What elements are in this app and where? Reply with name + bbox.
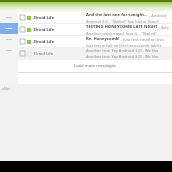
button[interactable]: Select message [20, 39, 25, 44]
staticText: Droid Life [34, 15, 55, 21]
staticText: Another quick email, love it. - "Nailed"… [86, 31, 170, 35]
staticText: Android 3.0 - "Nailed" Site Editor http:… [86, 19, 170, 23]
staticText: Another test: Yay Android 3.0! - We like… [86, 54, 170, 59]
staticText: - Another quick email, love it. - "Naile… [158, 25, 170, 30]
staticText: - Android 3.0 - "Nailed" Site Editor htt… [148, 13, 170, 18]
button[interactable] [0, 45, 18, 56]
button[interactable]: Star message [27, 52, 31, 56]
staticText: And the last one for tonight... [86, 12, 148, 18]
staticText: Another test: Yay Android 3.0! - We like… [86, 48, 170, 53]
staticText: Droid Life [34, 39, 55, 45]
button[interactable] [0, 23, 18, 34]
staticText: - Just test email on this honeycomb tabl… [120, 37, 170, 42]
button[interactable]: Load more messages [18, 60, 172, 72]
staticText: TESTING HONEYCOMB LATE NIGHT [86, 24, 158, 30]
button[interactable]: Select message [20, 27, 25, 32]
staticText: Droid Life [34, 51, 54, 57]
button[interactable] [0, 12, 18, 23]
button[interactable] [0, 34, 18, 45]
staticText: Load more messages [74, 63, 116, 69]
button[interactable]: Select message [18, 12, 172, 23]
button[interactable]: Select message [20, 15, 25, 20]
staticText: Droid Life [34, 27, 55, 33]
staticText: Re: Honeycomb! [86, 36, 120, 42]
button[interactable]: Select message [18, 24, 172, 35]
staticText: older [2, 87, 11, 91]
button[interactable]: Select message [20, 51, 25, 56]
button[interactable]: Select message [18, 36, 172, 47]
staticText: Just test email on this honeycomb tablet… [86, 43, 170, 47]
button[interactable]: Select message [18, 48, 172, 59]
